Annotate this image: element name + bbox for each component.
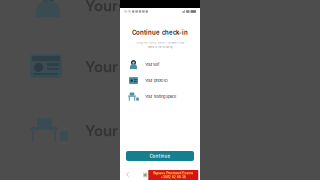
staticText: photos of the following (148, 46, 172, 49)
staticText: Your (85, 58, 118, 76)
staticText: Continue (149, 153, 170, 159)
staticText: Using this Service, you will be asked to… (136, 41, 184, 44)
button[interactable]: Yourself (120, 57, 200, 73)
staticText: Your testing space (145, 94, 176, 99)
button[interactable]: Back (124, 169, 132, 180)
button[interactable]: Continue (126, 151, 194, 161)
staticText: Bypass Proctored Exams (153, 171, 193, 175)
staticText: Your (85, 122, 118, 140)
staticText: Continue check-in (132, 29, 188, 36)
button[interactable]: Your photo ID (120, 73, 200, 89)
staticText: Yourself (145, 62, 159, 67)
button[interactable]: Your testing space (120, 89, 200, 105)
staticText: Your photo ID (145, 78, 168, 83)
staticText: +31412 82 88 38 (161, 175, 186, 179)
staticText: Yours (85, 0, 126, 15)
staticText: 10:18 (124, 10, 131, 13)
